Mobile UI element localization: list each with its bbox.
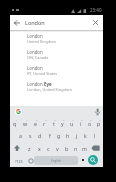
button[interactable]: London (10, 30, 103, 46)
staticText: i (80, 120, 82, 127)
staticText: t (53, 120, 55, 127)
button[interactable]: London (10, 78, 103, 94)
button[interactable]: i (76, 117, 85, 130)
staticText: v (56, 145, 59, 152)
staticText: e (34, 120, 37, 127)
staticText: j (76, 132, 78, 139)
button[interactable]: q (10, 117, 20, 130)
button[interactable]: p (94, 117, 103, 130)
staticText: k (84, 132, 87, 139)
staticText: KY, United States (27, 71, 58, 76)
button[interactable]: k (81, 129, 90, 142)
button[interactable]: a (15, 129, 25, 142)
staticText: b (65, 145, 69, 152)
staticText: 1 (16, 118, 18, 121)
staticText: d (38, 132, 42, 139)
staticText: p (97, 120, 101, 127)
button[interactable]: m (80, 142, 89, 155)
button[interactable]: j (72, 129, 81, 142)
staticText: Eye (44, 81, 52, 87)
staticText: a (19, 132, 22, 139)
button[interactable] (15, 108, 22, 115)
staticText: London (25, 19, 45, 26)
button[interactable]: f (45, 129, 54, 142)
staticText: ON, Canada (27, 55, 49, 60)
button[interactable]: v (53, 142, 62, 155)
button[interactable]: o (85, 117, 94, 130)
staticText: o (88, 120, 92, 127)
button[interactable]: d (35, 129, 45, 142)
button[interactable] (88, 155, 98, 165)
button[interactable]: u (67, 117, 76, 130)
button[interactable] (14, 20, 20, 26)
button[interactable]: b (62, 142, 71, 155)
button[interactable] (28, 158, 34, 164)
button[interactable] (91, 145, 101, 152)
button[interactable]: London (10, 62, 103, 78)
staticText: l (94, 132, 96, 139)
staticText: 0 (99, 118, 101, 121)
staticText: London (27, 81, 44, 87)
staticText: ?123 (15, 159, 23, 164)
button[interactable]: London (10, 15, 103, 30)
staticText: 3 (36, 118, 38, 121)
button[interactable] (80, 156, 85, 164)
button[interactable]: l (90, 129, 99, 142)
button[interactable]: t (49, 117, 58, 130)
button[interactable]: London (10, 46, 103, 62)
staticText: s (29, 132, 32, 139)
button[interactable] (94, 108, 101, 116)
button[interactable] (93, 20, 98, 25)
staticText: 2 (26, 118, 28, 121)
button[interactable]: c (44, 142, 53, 155)
staticText: q (13, 120, 17, 127)
staticText: r (43, 120, 46, 127)
button[interactable]: r (40, 117, 49, 130)
staticText: 7 (72, 118, 74, 121)
staticText: w (23, 120, 28, 127)
staticText: c (47, 145, 50, 152)
staticText: u (70, 120, 74, 127)
staticText: London, United Kingdom (27, 87, 72, 92)
staticText: n (74, 145, 78, 152)
staticText: h (66, 132, 70, 139)
staticText: m (82, 145, 87, 152)
staticText: f (49, 132, 51, 139)
button[interactable]: w (20, 117, 30, 130)
staticText: 23:40 (90, 7, 102, 13)
button[interactable]: x (34, 142, 44, 155)
staticText: x (38, 145, 41, 152)
button[interactable]: s (25, 129, 35, 142)
button[interactable]: e (30, 117, 40, 130)
staticText: y (61, 120, 64, 127)
button[interactable]: g (54, 129, 63, 142)
staticText: London (27, 65, 43, 71)
button[interactable] (12, 144, 22, 153)
staticText: 4 (45, 118, 47, 121)
button[interactable]: ?123 (12, 156, 26, 166)
button[interactable]: h (63, 129, 72, 142)
button[interactable]: z (24, 142, 34, 155)
staticText: London (27, 49, 43, 55)
button[interactable]: y (58, 117, 67, 130)
staticText: z (28, 145, 31, 152)
staticText: London (27, 33, 43, 39)
button[interactable]: English (34, 156, 78, 165)
staticText: English (51, 159, 62, 163)
staticText: 8 (81, 118, 83, 121)
staticText: g (57, 132, 61, 139)
staticText: 9 (90, 118, 92, 121)
button[interactable]: n (71, 142, 80, 155)
staticText: 6 (63, 118, 65, 121)
staticText: United Kingdom (27, 39, 57, 44)
staticText: 5 (54, 118, 56, 121)
